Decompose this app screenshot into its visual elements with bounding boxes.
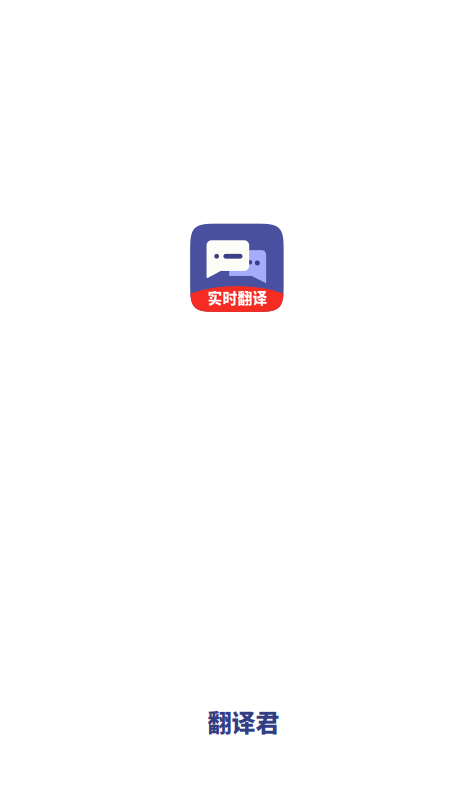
staticText: 实时翻译 [207, 287, 267, 308]
staticText: 翻译君 [207, 704, 279, 739]
